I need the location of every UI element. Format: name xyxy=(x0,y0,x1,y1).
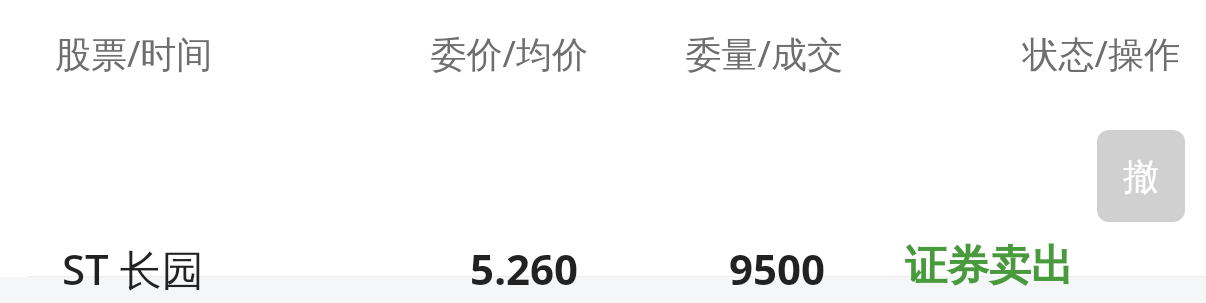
staticText: 5.260 xyxy=(318,240,578,303)
staticText: 证券卖出 xyxy=(828,240,1073,303)
staticText: 股票/时间 xyxy=(55,29,315,83)
button[interactable]: ST 长园 xyxy=(0,110,1206,270)
staticText: 撤 xyxy=(1123,154,1159,199)
staticText: 9500 xyxy=(565,240,825,303)
staticText: 委价/均价 xyxy=(328,29,588,83)
staticText: 状态/操作 xyxy=(920,29,1180,83)
staticText: 委量/成交 xyxy=(583,29,843,83)
button[interactable]: 撤单 Cancel order xyxy=(1097,130,1185,222)
staticText: ST 长园 xyxy=(62,240,362,303)
